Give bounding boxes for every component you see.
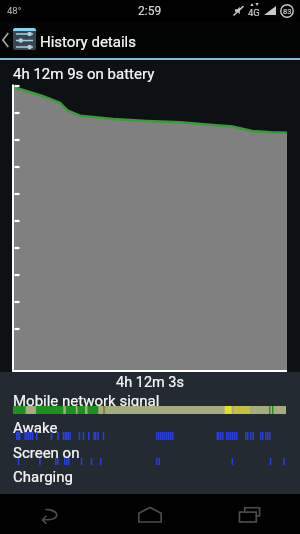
staticText: 48° [7,5,22,16]
button[interactable]: Home [100,494,200,534]
button[interactable]: Back [0,494,100,534]
other: Navigate up [2,33,9,47]
staticText: Awake [13,419,58,437]
staticText: Screen on [13,444,80,462]
staticText: History details [40,33,136,51]
button[interactable]: Recent apps [200,494,300,534]
staticText: 4h 12m 9s on battery [13,65,155,83]
staticText: Mobile network signal [13,392,160,410]
staticText: Charging [13,468,73,486]
staticText: 4h 12m 3s [116,374,184,391]
staticText: 83 [283,7,292,16]
button[interactable]: Navigate up [0,21,300,58]
staticText: 2:59 [138,4,162,18]
staticText: 4G [248,7,260,18]
